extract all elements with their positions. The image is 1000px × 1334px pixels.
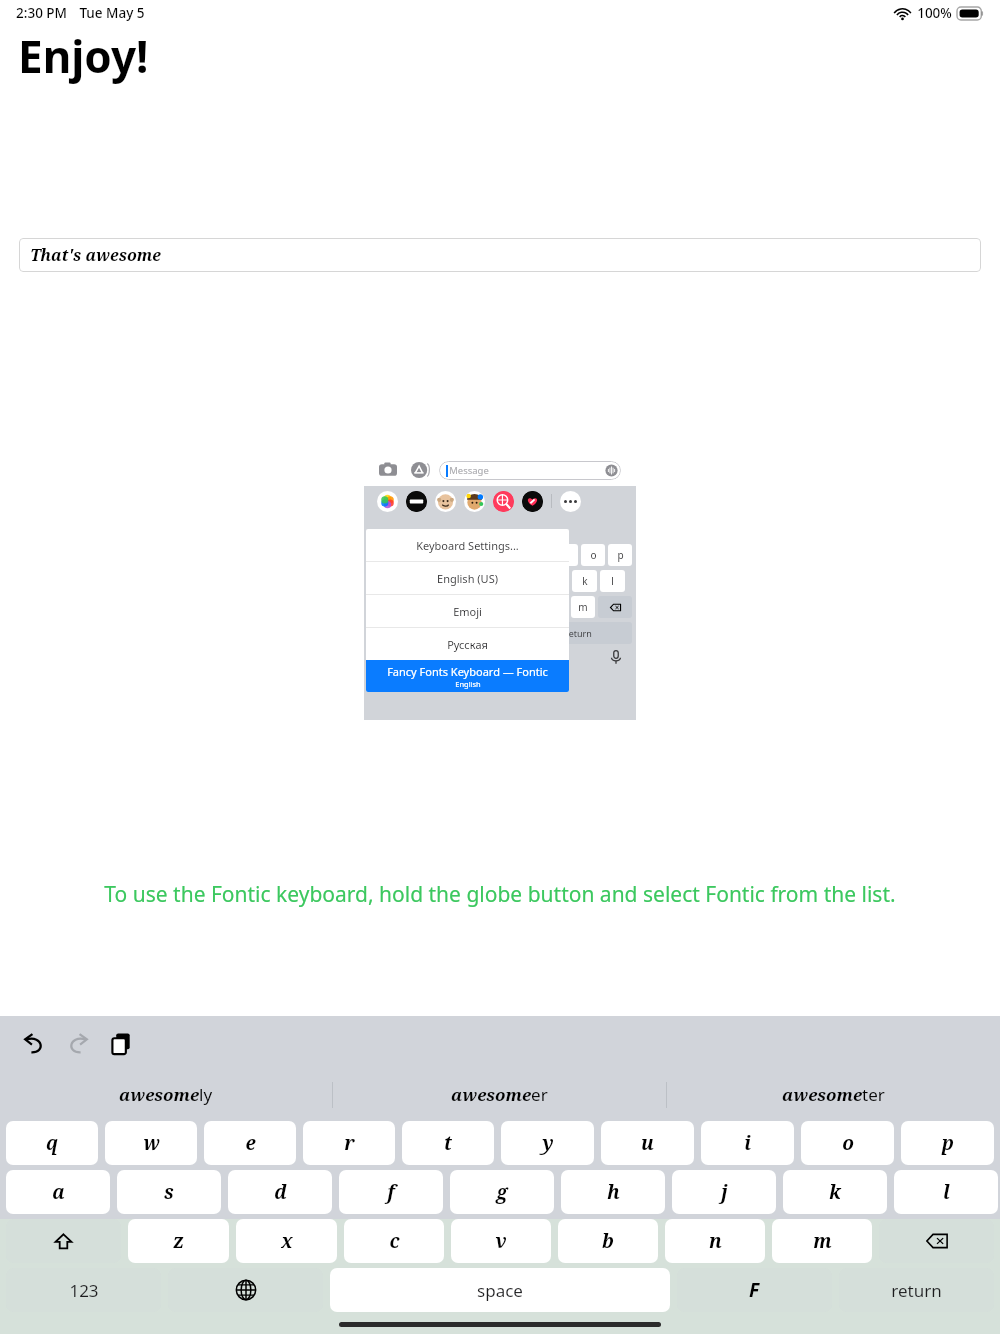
button[interactable]: iMessage app — [377, 491, 398, 512]
button[interactable]: d — [228, 1170, 332, 1214]
button[interactable]: Shift — [6, 1219, 121, 1263]
button[interactable]: Return — [839, 1268, 994, 1312]
button[interactable]: Redo — [58, 1024, 98, 1064]
button[interactable]: i — [554, 544, 578, 566]
button[interactable]: iMessage app — [406, 491, 427, 512]
staticText: awesomely — [119, 1083, 213, 1106]
button[interactable]: r — [446, 544, 470, 566]
button[interactable]: v — [451, 1219, 551, 1263]
staticText: f — [471, 574, 475, 588]
button[interactable]: q — [6, 1121, 98, 1165]
button[interactable]: Русская — [366, 628, 569, 660]
staticText: Keyboard Settings... — [416, 538, 519, 553]
button[interactable]: More apps — [560, 491, 581, 512]
button[interactable]: awesomeer — [333, 1071, 666, 1118]
button[interactable]: o — [581, 544, 605, 566]
staticText: Fancy Fonts Keyboard — Fontic — [387, 664, 548, 679]
button[interactable]: Undo — [14, 1024, 54, 1064]
button[interactable]: awesometer — [667, 1071, 1000, 1118]
button[interactable]: Camera — [379, 461, 397, 479]
button[interactable]: q — [368, 544, 391, 566]
button[interactable]: g — [450, 1170, 554, 1214]
button[interactable]: h — [561, 1170, 665, 1214]
button[interactable]: r — [303, 1121, 395, 1165]
button[interactable]: a — [6, 1170, 110, 1214]
button[interactable]: n — [665, 1219, 765, 1263]
button[interactable]: e — [420, 544, 443, 566]
button[interactable]: y — [500, 544, 524, 566]
staticText: p — [942, 1130, 954, 1156]
button[interactable]: c — [462, 596, 487, 618]
staticText: Emoji — [453, 604, 482, 619]
button[interactable]: App Store — [411, 461, 429, 479]
button[interactable]: l — [894, 1170, 998, 1214]
button[interactable]: w — [394, 544, 417, 566]
button[interactable]: English (US) — [366, 562, 569, 594]
staticText: y — [542, 1130, 554, 1156]
button[interactable]: space — [330, 1268, 670, 1312]
button[interactable]: j — [672, 1170, 776, 1214]
button[interactable]: y — [501, 1121, 594, 1165]
staticText: Message — [449, 464, 489, 477]
button[interactable]: s — [117, 1170, 221, 1214]
button[interactable]: p — [608, 544, 632, 566]
button[interactable]: b — [558, 1219, 658, 1263]
staticText: F — [478, 626, 485, 640]
button[interactable]: Numbers — [6, 1268, 161, 1312]
button[interactable]: u — [601, 1121, 694, 1165]
button[interactable]: Emoji — [366, 595, 569, 627]
button[interactable]: Fancy Fonts Keyboard — Fontic — [366, 660, 569, 692]
button[interactable]: k — [572, 570, 597, 592]
button[interactable]: x — [434, 596, 459, 618]
button[interactable]: Fontic fonts — [677, 1268, 832, 1312]
button[interactable]: f — [339, 1170, 443, 1214]
button[interactable]: g — [488, 570, 513, 592]
staticText: n — [709, 1228, 722, 1254]
button[interactable]: w — [105, 1121, 197, 1165]
staticText: w — [402, 548, 410, 562]
button[interactable]: u — [527, 544, 551, 566]
button[interactable]: o — [801, 1121, 894, 1165]
button[interactable]: d — [432, 570, 457, 592]
button[interactable]: l — [600, 570, 625, 592]
button[interactable]: p — [901, 1121, 994, 1165]
button[interactable]: c — [344, 1219, 444, 1263]
button[interactable]: t — [473, 544, 497, 566]
button[interactable]: x — [236, 1219, 337, 1263]
button[interactable]: z — [128, 1219, 229, 1263]
button[interactable]: Backspace — [879, 1219, 994, 1263]
staticText: d — [441, 574, 448, 588]
button[interactable]: f — [460, 570, 485, 592]
button[interactable]: t — [402, 1121, 494, 1165]
button[interactable]: k — [783, 1170, 887, 1214]
button[interactable]: e — [204, 1121, 296, 1165]
staticText: o — [842, 1130, 854, 1156]
button[interactable]: Keyboard Settings... — [366, 529, 569, 561]
button[interactable]: Message — [439, 461, 621, 480]
staticText: s — [164, 1179, 174, 1205]
button[interactable]: iMessage app — [522, 491, 543, 512]
button[interactable]: m — [772, 1219, 872, 1263]
button[interactable]: m — [571, 596, 595, 618]
button[interactable]: awesomely — [0, 1071, 332, 1118]
button[interactable]: Copy — [102, 1024, 142, 1064]
button[interactable]: iMessage app — [435, 491, 456, 512]
button[interactable]: That's awesome — [19, 238, 981, 272]
button[interactable]: Switch keyboard — [168, 1268, 323, 1312]
staticText: Enjoy! — [18, 26, 149, 86]
staticText: e — [429, 548, 435, 562]
staticText: q — [376, 548, 383, 562]
button[interactable]: iMessage app — [493, 491, 514, 512]
button[interactable]: iMessage app — [464, 491, 485, 512]
button[interactable]: i — [701, 1121, 794, 1165]
